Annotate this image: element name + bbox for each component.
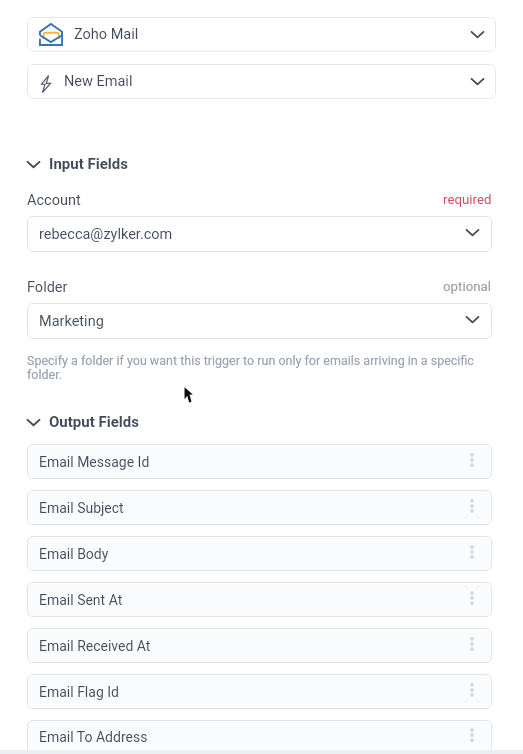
staticText: Email Subject — [39, 500, 124, 516]
other: Reorder — [470, 728, 474, 742]
staticText: Email Body — [39, 546, 109, 562]
button[interactable]: Email Flag Id — [27, 674, 492, 709]
button[interactable]: Email Body — [27, 536, 492, 571]
staticText: Email Received At — [39, 638, 151, 654]
staticText: Zoho Mail — [74, 26, 139, 43]
button[interactable]: Email Sent At — [27, 582, 492, 617]
other: Reorder — [470, 683, 474, 697]
staticText: Account — [27, 192, 81, 209]
staticText: Input Fields — [49, 155, 128, 173]
button[interactable]: Email Subject — [27, 490, 492, 525]
staticText: rebecca@zylker.com — [39, 226, 173, 243]
button[interactable]: Input Fields — [27, 155, 492, 173]
button[interactable]: Email Message Id — [27, 444, 492, 479]
staticText: Folder — [27, 279, 68, 296]
staticText: optional — [443, 279, 492, 295]
button[interactable]: Email To Address — [27, 720, 492, 754]
other: Reorder — [470, 637, 474, 651]
staticText: Email Sent At — [39, 592, 123, 608]
other: Reorder — [470, 499, 474, 513]
staticText: Email Flag Id — [39, 684, 119, 700]
button[interactable]: Email Received At — [27, 628, 492, 663]
staticText: Specify a folder if you want this trigge… — [27, 353, 492, 382]
staticText: required — [443, 192, 492, 208]
button[interactable]: Output Fields — [27, 413, 492, 431]
button[interactable]: Zoho Mail — [27, 17, 496, 52]
button[interactable]: New Email — [27, 64, 496, 99]
staticText: Output Fields — [49, 413, 139, 431]
staticText: Email Message Id — [39, 454, 150, 470]
other: Reorder — [470, 591, 474, 605]
button[interactable]: Marketing — [27, 303, 492, 339]
other: Reorder — [470, 453, 474, 467]
other: Reorder — [470, 545, 474, 559]
staticText: Marketing — [39, 313, 104, 330]
staticText: Email To Address — [39, 729, 148, 745]
button[interactable]: rebecca@zylker.com — [27, 216, 492, 252]
staticText: New Email — [64, 73, 133, 90]
